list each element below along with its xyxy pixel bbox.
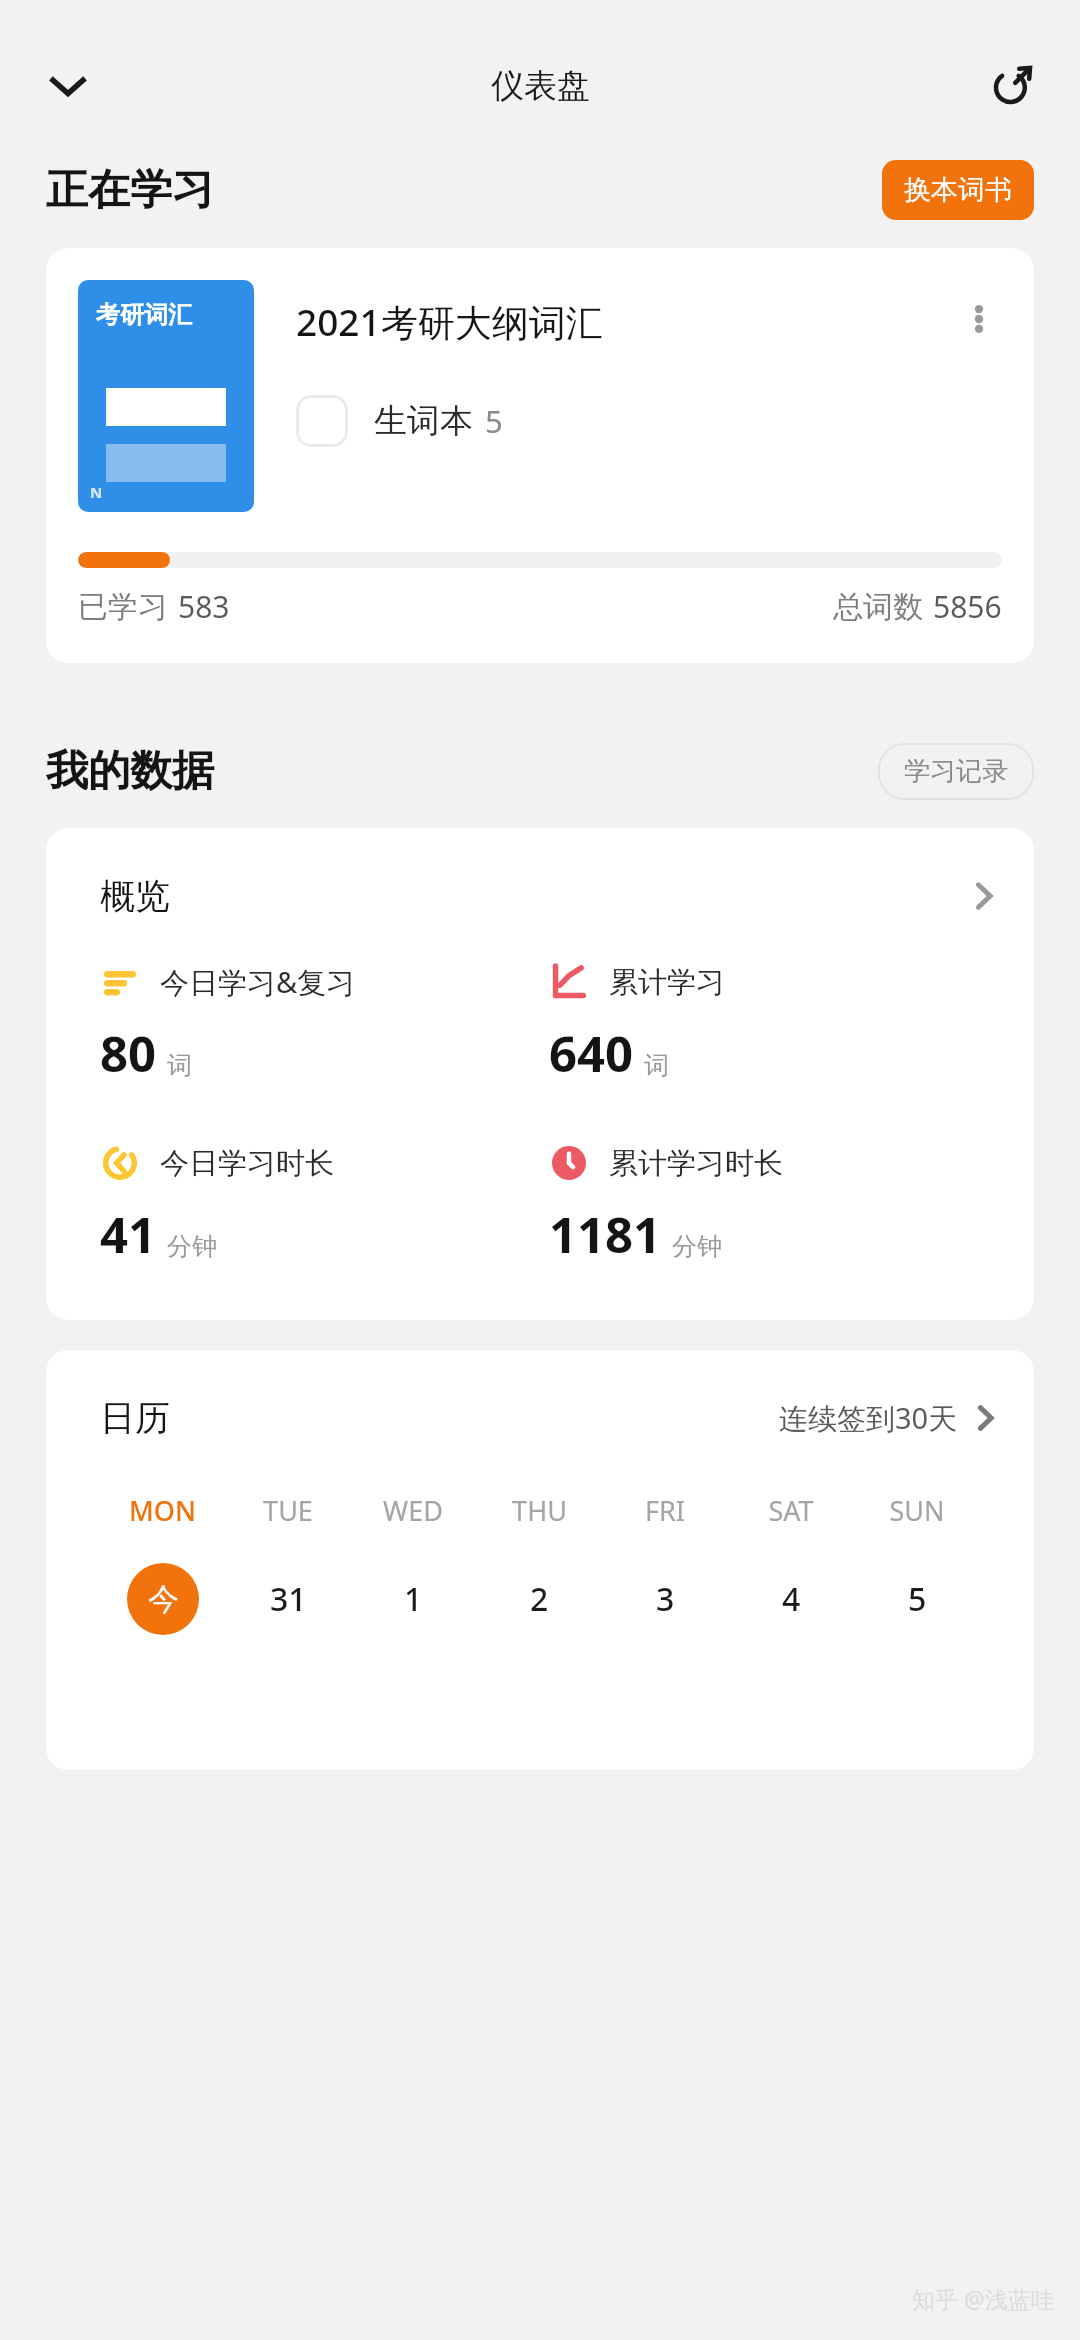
staticText: 总词数 bbox=[833, 588, 923, 626]
button[interactable]: 今 bbox=[127, 1563, 199, 1635]
staticText: 今日学习&复习 bbox=[160, 962, 356, 1002]
staticText: 词 bbox=[167, 1050, 192, 1081]
button[interactable]: 连续签到30天 bbox=[779, 1398, 998, 1438]
staticText: 1 bbox=[404, 1577, 423, 1621]
button[interactable]: 换本词书 bbox=[882, 160, 1034, 220]
button[interactable]: 今日学习时长 bbox=[100, 1143, 549, 1268]
staticText: WED bbox=[383, 1492, 443, 1529]
staticText: 仪表盘 bbox=[491, 65, 590, 107]
button[interactable]: 2 bbox=[503, 1563, 575, 1635]
button[interactable]: 考研词汇 bbox=[46, 248, 1034, 663]
staticText: 正在学习 bbox=[46, 164, 214, 217]
staticText: N bbox=[90, 482, 103, 502]
staticText: 今日学习时长 bbox=[160, 1145, 334, 1182]
staticText: 80 bbox=[100, 1020, 157, 1087]
button[interactable]: 生词本 bbox=[296, 395, 503, 447]
staticText: 31 bbox=[270, 1577, 307, 1621]
staticText: 日历 bbox=[100, 1396, 170, 1440]
staticText: TUE bbox=[263, 1492, 313, 1529]
button[interactable]: 累计学习 bbox=[549, 962, 998, 1087]
staticText: 5 bbox=[485, 400, 503, 442]
staticText: 41 bbox=[100, 1201, 157, 1268]
button[interactable]: Collapse bbox=[40, 58, 96, 114]
staticText: 生词本 bbox=[374, 400, 473, 442]
staticText: 分钟 bbox=[167, 1231, 217, 1262]
staticText: 2 bbox=[530, 1577, 549, 1621]
staticText: 连续签到30天 bbox=[779, 1398, 958, 1438]
staticText: 知乎 @浅蓝哇 bbox=[912, 2283, 1054, 2314]
staticText: 583 bbox=[178, 586, 230, 627]
button[interactable]: 3 bbox=[629, 1563, 701, 1635]
staticText: SUN bbox=[889, 1492, 945, 1529]
staticText: 学习记录 bbox=[904, 755, 1008, 788]
button[interactable]: 31 bbox=[252, 1563, 324, 1635]
staticText: 5856 bbox=[933, 586, 1002, 627]
staticText: 2021考研大纲词汇 bbox=[296, 296, 956, 347]
staticText: 我的数据 bbox=[46, 745, 214, 798]
button[interactable]: 累计学习时长 bbox=[549, 1143, 998, 1268]
staticText: 5 bbox=[908, 1577, 927, 1621]
staticText: 分钟 bbox=[672, 1231, 722, 1262]
staticText: 已学习 bbox=[78, 588, 168, 626]
staticText: 概览 bbox=[100, 874, 170, 918]
staticText: 今 bbox=[148, 1580, 179, 1619]
staticText: 1181 bbox=[549, 1201, 662, 1268]
staticText: SAT bbox=[768, 1492, 814, 1529]
staticText: MON bbox=[129, 1492, 196, 1529]
staticText: FRI bbox=[645, 1492, 685, 1529]
staticText: 3 bbox=[656, 1577, 675, 1621]
button[interactable]: 概览 bbox=[100, 874, 998, 918]
button[interactable]: 今日学习&复习 bbox=[100, 962, 549, 1087]
button[interactable]: 4 bbox=[755, 1563, 827, 1635]
staticText: 考研词汇 bbox=[96, 300, 192, 330]
button[interactable]: More options bbox=[956, 296, 1002, 342]
staticText: THU bbox=[512, 1492, 567, 1529]
staticText: 640 bbox=[549, 1020, 634, 1087]
staticText: 累计学习 bbox=[609, 964, 725, 1001]
button[interactable]: 学习记录 bbox=[878, 743, 1034, 800]
staticText: 换本词书 bbox=[904, 173, 1012, 207]
button[interactable]: 5 bbox=[881, 1563, 953, 1635]
staticText: 词 bbox=[644, 1050, 669, 1081]
staticText: 4 bbox=[782, 1577, 801, 1621]
button[interactable]: Share bbox=[982, 56, 1042, 116]
button[interactable]: 1 bbox=[377, 1563, 449, 1635]
staticText: 累计学习时长 bbox=[609, 1145, 783, 1182]
